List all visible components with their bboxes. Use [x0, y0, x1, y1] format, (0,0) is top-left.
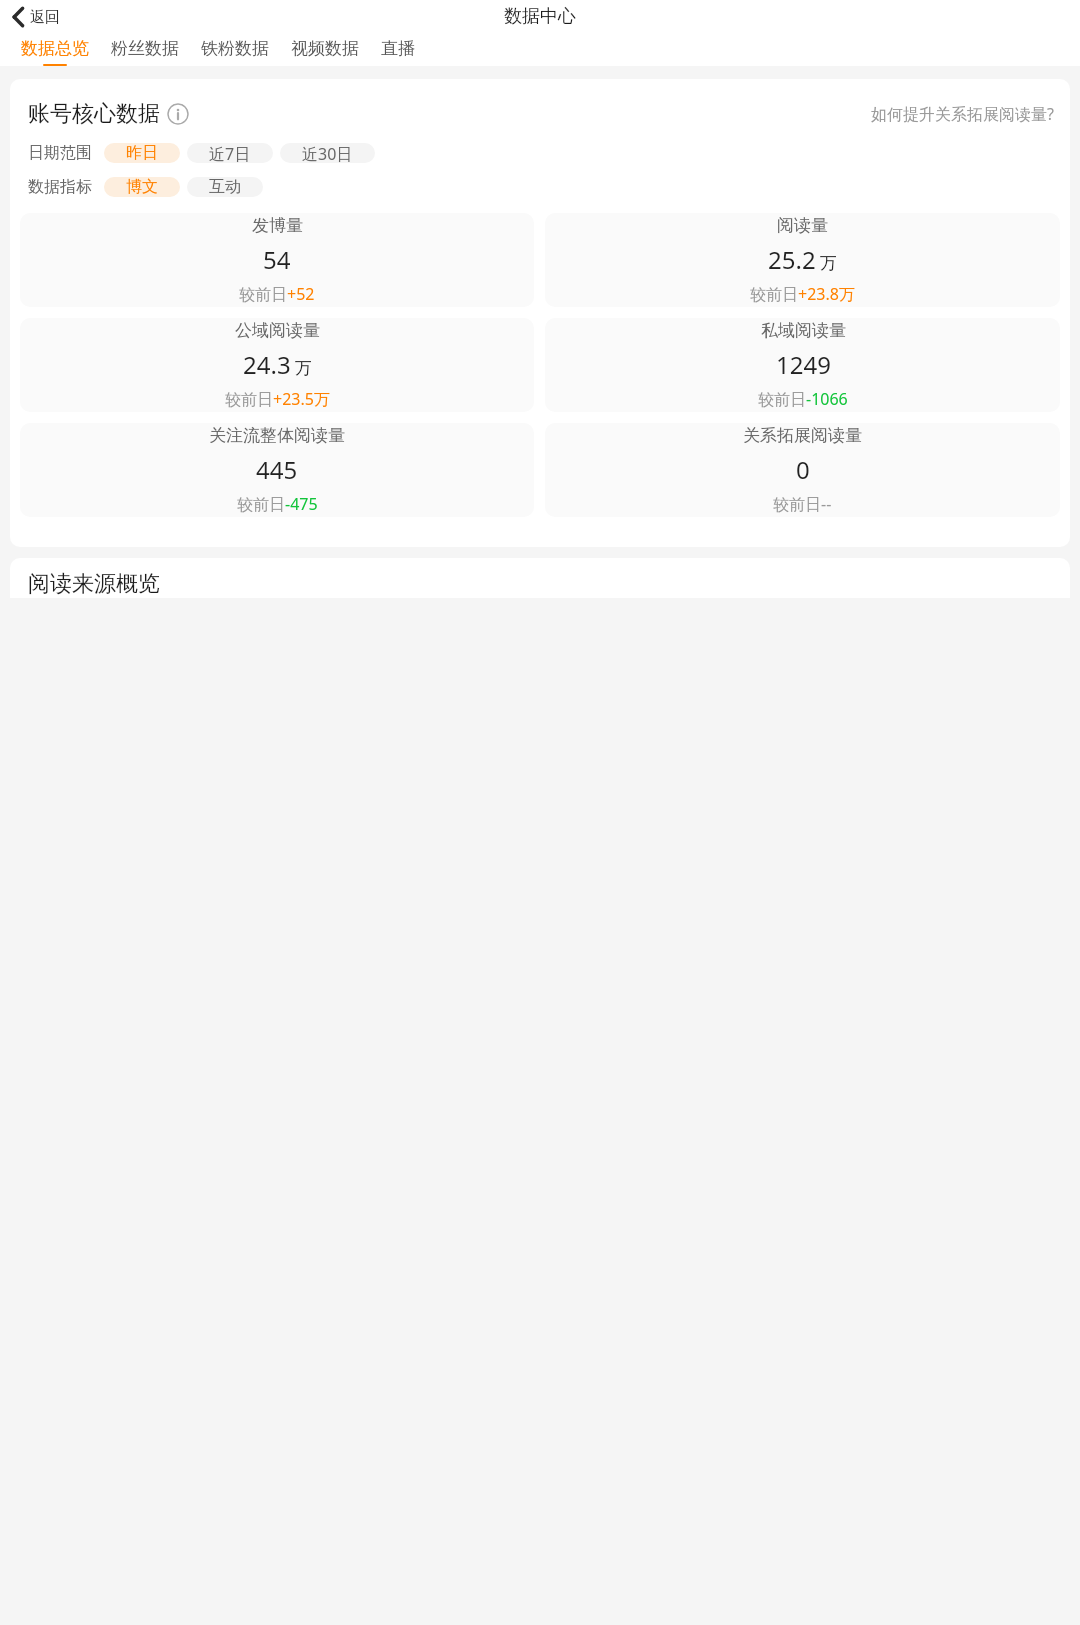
button[interactable]: 直播	[370, 33, 426, 66]
staticText: 账号核心数据	[28, 100, 160, 128]
staticText: 数据指标	[28, 177, 92, 197]
staticText: 万	[295, 358, 312, 379]
staticText: 私域阅读量	[761, 320, 846, 341]
staticText: 较前日+52	[239, 283, 315, 305]
button[interactable]: 返回	[8, 5, 64, 29]
staticText: 数据总览	[21, 38, 89, 59]
staticText: 近30日	[302, 143, 353, 163]
staticText: 445	[256, 453, 298, 486]
button[interactable]: 博文	[104, 177, 180, 197]
button[interactable]: 互动	[187, 177, 263, 197]
button[interactable]: 关系拓展阅读量	[545, 423, 1060, 517]
staticText: 日期范围	[28, 143, 92, 163]
staticText: 发博量	[252, 215, 303, 236]
button[interactable]: 昨日	[104, 143, 180, 163]
staticText: 互动	[209, 177, 241, 197]
button[interactable]: 发博量	[20, 213, 534, 307]
button[interactable]: 关注流整体阅读量	[20, 423, 534, 517]
button[interactable]: 数据总览	[10, 33, 100, 66]
staticText: 关注流整体阅读量	[209, 425, 345, 446]
staticText: 万	[820, 253, 837, 274]
button[interactable]: 铁粉数据	[190, 33, 280, 66]
staticText: 直播	[381, 38, 415, 59]
staticText: 视频数据	[291, 38, 359, 59]
button[interactable]: 说明	[167, 103, 189, 125]
button[interactable]: 如何提升关系拓展阅读量?	[869, 101, 1056, 127]
button[interactable]: 公域阅读量	[20, 318, 534, 412]
staticText: 25.2	[768, 243, 816, 276]
button[interactable]: 粉丝数据	[100, 33, 190, 66]
staticText: 阅读量	[777, 215, 828, 236]
staticText: 铁粉数据	[201, 38, 269, 59]
staticText: 24.3	[243, 348, 291, 381]
staticText: 较前日--	[773, 493, 832, 515]
staticText: 较前日-1066	[758, 388, 848, 410]
staticText: 昨日	[126, 143, 158, 163]
button[interactable]: 视频数据	[280, 33, 370, 66]
staticText: 返回	[30, 8, 60, 27]
staticText: 如何提升关系拓展阅读量?	[871, 103, 1054, 125]
button[interactable]: 阅读量	[545, 213, 1060, 307]
staticText: 粉丝数据	[111, 38, 179, 59]
button[interactable]: 私域阅读量	[545, 318, 1060, 412]
staticText: 博文	[126, 177, 158, 197]
staticText: 较前日+23.5万	[225, 388, 330, 410]
button[interactable]: 近30日	[280, 143, 375, 163]
staticText: 较前日-475	[237, 493, 318, 515]
staticText: 关系拓展阅读量	[743, 425, 862, 446]
staticText: 数据中心	[504, 5, 576, 28]
staticText: 近7日	[209, 143, 251, 163]
staticText: 54	[263, 243, 291, 276]
staticText: 公域阅读量	[235, 320, 320, 341]
button[interactable]: 近7日	[187, 143, 273, 163]
staticText: 较前日+23.8万	[750, 283, 855, 305]
staticText: 0	[796, 453, 810, 486]
staticText: 1249	[776, 348, 831, 381]
staticText: 阅读来源概览	[28, 570, 160, 598]
